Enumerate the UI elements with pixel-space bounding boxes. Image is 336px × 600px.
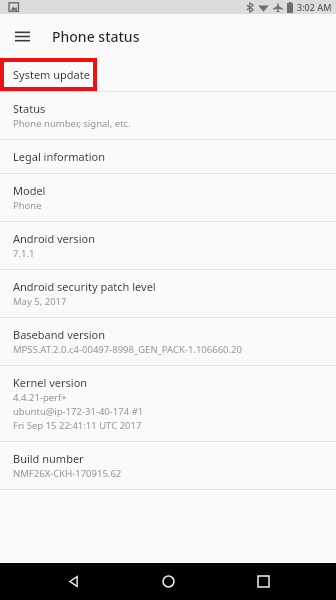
button[interactable]: Recent apps [241, 563, 285, 600]
staticText: Android security patch level [13, 279, 156, 294]
staticText: NMF26X-CKH-170915.62 [13, 467, 122, 480]
staticText: Fri Sep 15 22:41:11 UTC 2017 [13, 419, 142, 432]
staticText: System update [13, 67, 90, 82]
staticText: Legal information [13, 149, 105, 164]
button[interactable]: Kernel version [0, 366, 336, 441]
staticText: Build number [13, 451, 84, 466]
staticText: ubuntu@ip-172-31-40-174 #1 [13, 405, 144, 418]
button[interactable]: Model [0, 174, 336, 221]
staticText: Kernel version [13, 375, 88, 390]
staticText: 7.1.1 [13, 247, 35, 260]
staticText: 4.4.21-perf+ [13, 391, 67, 404]
button[interactable]: Android security patch level [0, 270, 336, 317]
button[interactable]: Build number [0, 442, 336, 489]
staticText: Android version [13, 231, 95, 246]
staticText: Phone status [52, 27, 140, 46]
button[interactable]: Android version [0, 222, 336, 269]
staticText: 3:02 AM [297, 1, 332, 13]
staticText: Phone [13, 199, 42, 212]
staticText: Status [13, 101, 46, 116]
button[interactable]: Back [51, 563, 95, 600]
button[interactable]: Status [0, 92, 336, 139]
staticText: Phone number, signal, etc. [13, 117, 131, 130]
button[interactable]: Home [146, 563, 190, 600]
staticText: Model [13, 183, 46, 198]
button[interactable]: Baseband version [0, 318, 336, 365]
button[interactable]: System update [0, 58, 336, 91]
button[interactable]: Legal information [0, 140, 336, 173]
button[interactable]: Open navigation menu [8, 22, 36, 50]
staticText: Baseband version [13, 327, 106, 342]
staticText: May 5, 2017 [13, 295, 67, 308]
staticText: MPSS.AT.2.0.c4-00497-8998_GEN_PACK-1.106… [13, 343, 242, 356]
